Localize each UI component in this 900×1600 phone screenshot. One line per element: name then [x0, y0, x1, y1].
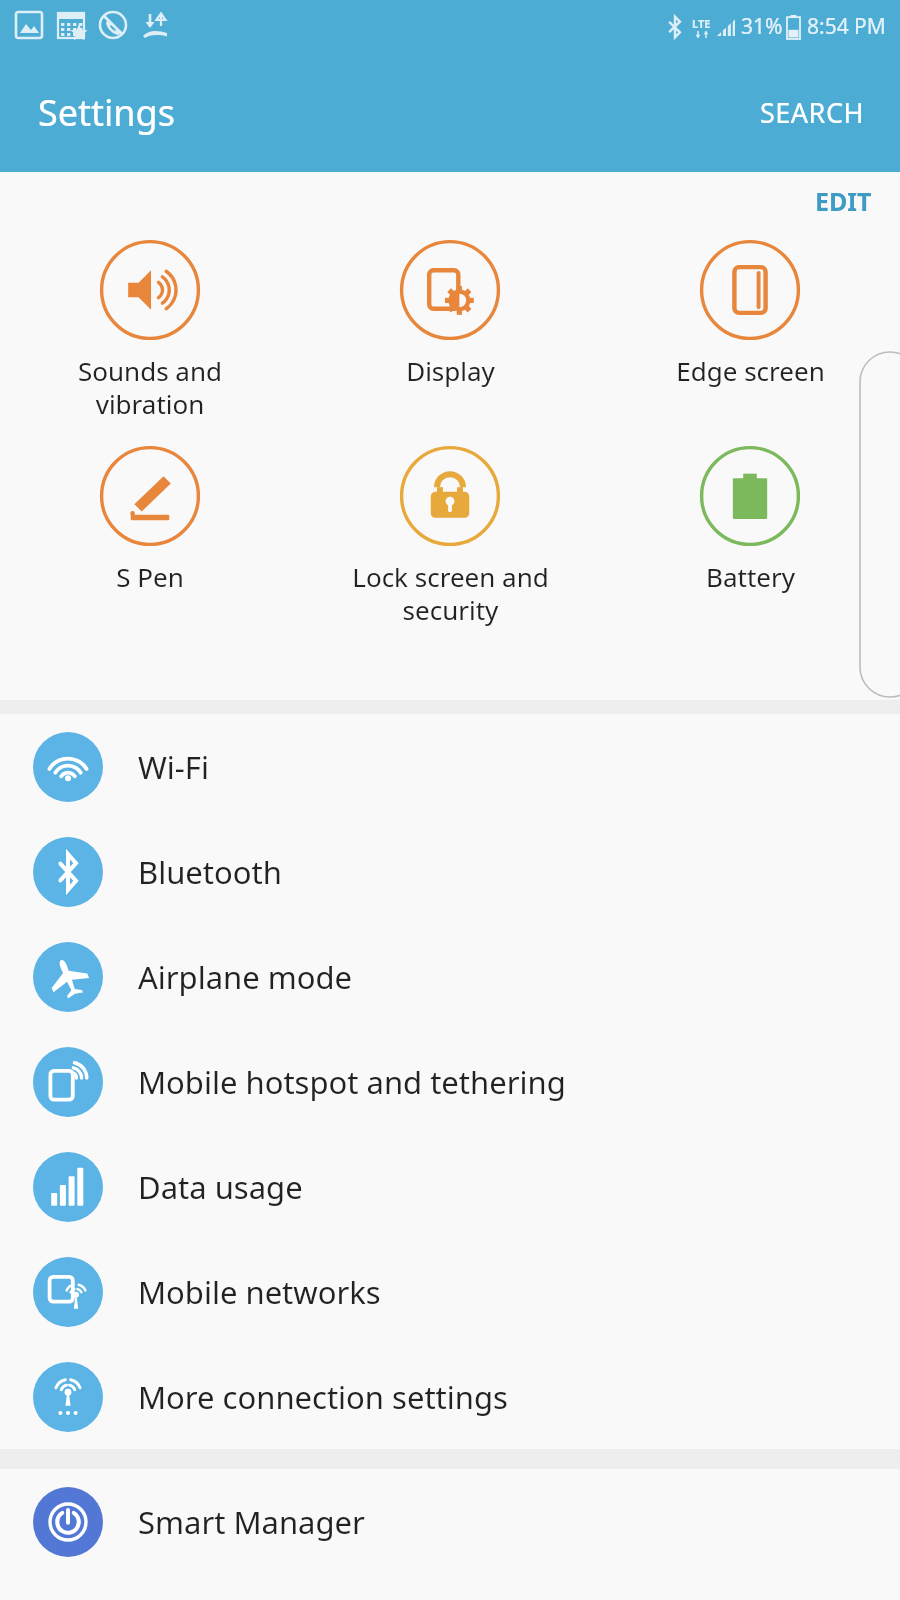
staticText: EDIT — [815, 184, 872, 218]
staticText: Mobile hotspot and tethering — [138, 1061, 566, 1103]
staticText: Mobile networks — [138, 1271, 381, 1313]
button[interactable]: Smart Manager — [0, 1469, 900, 1574]
button[interactable]: Edge screen — [600, 240, 900, 388]
staticText: 31% — [741, 12, 783, 41]
staticText: 8:54 PM — [807, 12, 886, 41]
button[interactable]: Bluetooth — [0, 819, 900, 924]
staticText: LTE — [692, 16, 711, 31]
button[interactable]: Sounds and vibration — [0, 240, 300, 422]
staticText: Edge screen — [676, 353, 825, 388]
staticText: Sounds and vibration — [78, 353, 222, 422]
staticText: Battery — [706, 559, 795, 594]
staticText: Lock screen and security — [352, 559, 549, 628]
staticText: Settings — [38, 88, 175, 137]
button[interactable]: Data usage — [0, 1134, 900, 1239]
staticText: Airplane mode — [138, 956, 353, 998]
button[interactable]: SEARCH — [724, 78, 900, 147]
staticText: More connection settings — [138, 1376, 508, 1418]
button[interactable]: Lock screen and security — [300, 446, 600, 628]
staticText: Data usage — [138, 1166, 303, 1208]
button[interactable]: Mobile networks — [0, 1239, 900, 1344]
button[interactable]: Display — [300, 240, 600, 388]
button[interactable]: S Pen — [0, 446, 300, 594]
button[interactable]: Mobile hotspot and tethering — [0, 1029, 900, 1134]
button[interactable]: More connection settings — [0, 1344, 900, 1449]
staticText: Wi-Fi — [138, 746, 209, 788]
button[interactable]: EDIT — [795, 172, 900, 226]
staticText: Bluetooth — [138, 851, 282, 893]
button[interactable]: Battery — [600, 446, 900, 594]
staticText: S Pen — [116, 559, 184, 594]
button[interactable]: Wi-Fi — [0, 714, 900, 819]
staticText: Display — [406, 353, 495, 388]
staticText: SEARCH — [760, 94, 864, 131]
staticText: Smart Manager — [138, 1501, 365, 1543]
button[interactable]: Airplane mode — [0, 924, 900, 1029]
